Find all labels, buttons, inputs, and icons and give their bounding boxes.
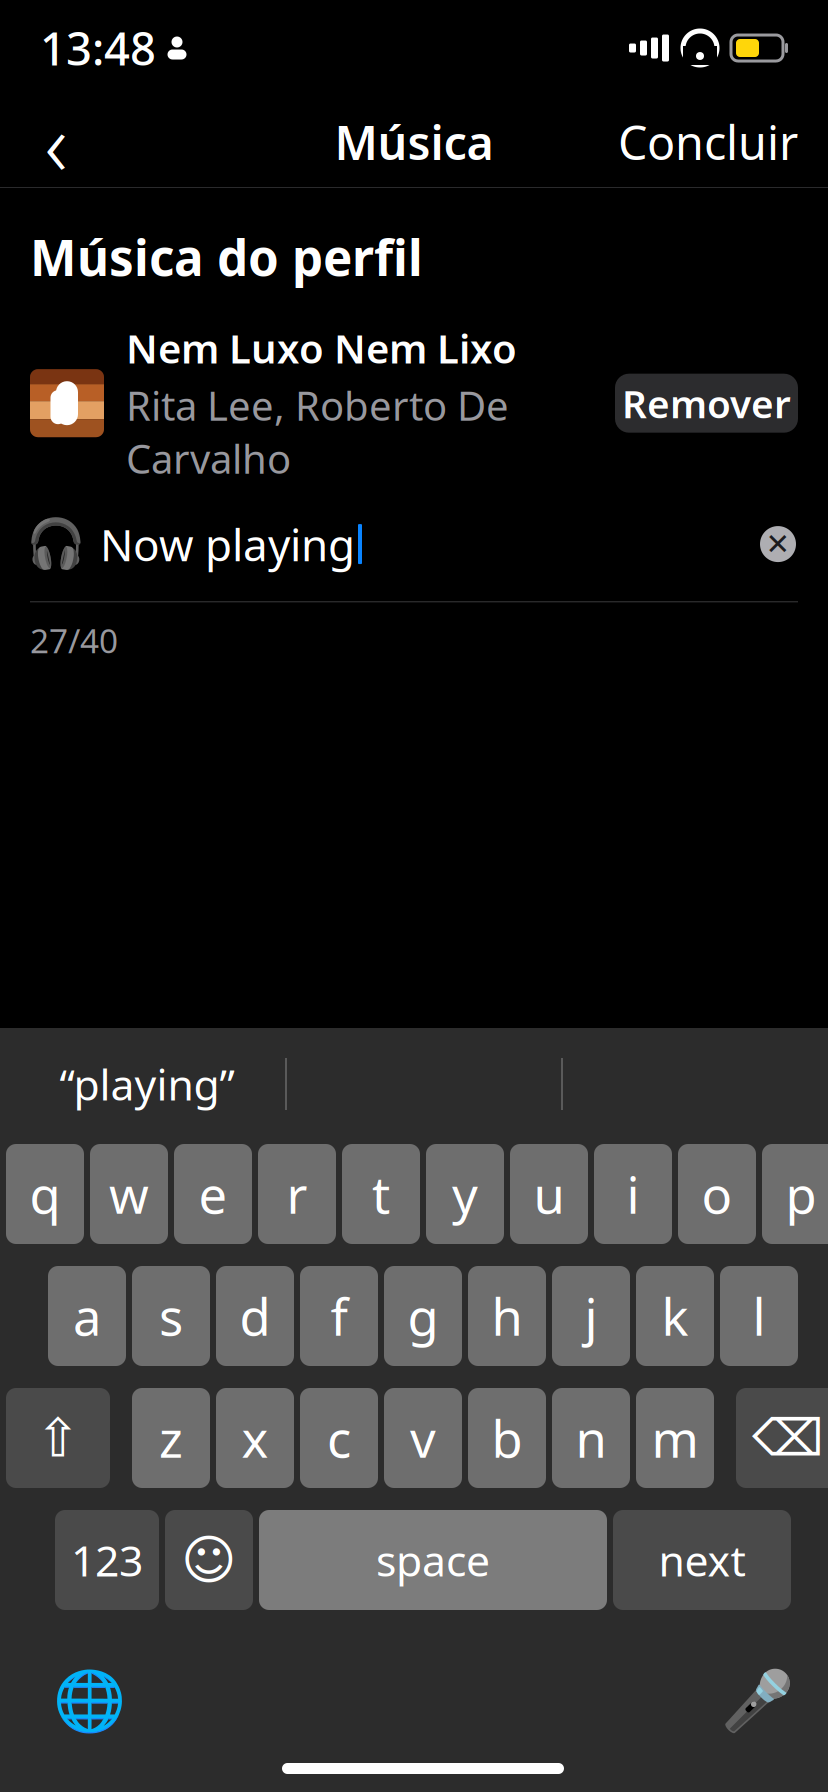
button[interactable]: t (342, 1144, 420, 1244)
staticText: d (239, 1282, 270, 1350)
button[interactable]: d (216, 1266, 294, 1366)
button[interactable]: ⌫ (736, 1388, 828, 1488)
staticText: r (286, 1160, 307, 1228)
button[interactable]: j (552, 1266, 630, 1366)
staticText: q (29, 1160, 60, 1228)
staticText: l (752, 1282, 765, 1350)
staticText: p (785, 1160, 816, 1228)
staticText: Rita Lee, Roberto De Carvalho (126, 379, 509, 485)
button[interactable]: s (132, 1266, 210, 1366)
staticText: y (452, 1160, 478, 1228)
button[interactable]: ☺ (165, 1510, 253, 1610)
button[interactable]: n (552, 1388, 630, 1488)
button[interactable]: Limpar texto (752, 518, 804, 570)
button[interactable]: h (468, 1266, 546, 1366)
staticText: ‹ (44, 84, 67, 200)
staticText: Música (334, 111, 493, 173)
staticText: x (241, 1404, 268, 1472)
button[interactable]: u (510, 1144, 588, 1244)
button[interactable]: c (300, 1388, 378, 1488)
button[interactable]: ⇧ (6, 1388, 110, 1488)
button[interactable]: a (48, 1266, 126, 1366)
button[interactable]: y (426, 1144, 504, 1244)
button[interactable]: l (720, 1266, 798, 1366)
button[interactable]: x (216, 1388, 294, 1488)
staticText: ⌫ (752, 1409, 824, 1467)
button[interactable]: next (613, 1510, 791, 1610)
staticText: space (376, 1532, 490, 1588)
staticText: 27/40 (30, 618, 118, 663)
staticText: z (159, 1404, 183, 1472)
button[interactable]: g (384, 1266, 462, 1366)
staticText: Concluir (618, 111, 798, 173)
staticText: n (575, 1404, 606, 1472)
button[interactable]: f (300, 1266, 378, 1366)
staticText: 🎤 (720, 1667, 793, 1734)
staticText: v (410, 1404, 436, 1472)
staticText: 123 (71, 1532, 143, 1588)
staticText: j (584, 1282, 597, 1350)
staticText: e (198, 1160, 227, 1228)
staticText: f (330, 1282, 347, 1350)
button[interactable]: Ditado (709, 1653, 805, 1749)
staticText: ☺ (181, 1530, 237, 1590)
button[interactable]: i (594, 1144, 672, 1244)
staticText: k (661, 1282, 688, 1350)
button[interactable]: Concluir (612, 97, 804, 187)
staticText: Nem Luxo Nem Lixo (126, 321, 517, 375)
button[interactable]: Mudar idioma (41, 1653, 137, 1749)
staticText: “playing” (59, 1056, 234, 1112)
button[interactable]: Voltar (24, 103, 88, 181)
staticText: w (109, 1160, 149, 1228)
button[interactable]: o (678, 1144, 756, 1244)
button[interactable]: Remover (615, 374, 798, 433)
button[interactable]: 123 (55, 1510, 159, 1610)
staticText: s (159, 1282, 183, 1350)
staticText: 🌐 (52, 1667, 125, 1734)
staticText: h (491, 1282, 522, 1350)
staticText: c (327, 1404, 351, 1472)
button[interactable]: q (6, 1144, 84, 1244)
staticText: t (372, 1160, 390, 1228)
button[interactable]: “playing” (9, 1032, 285, 1136)
button[interactable]: r (258, 1144, 336, 1244)
button[interactable]: space (259, 1510, 607, 1610)
staticText: m (651, 1404, 698, 1472)
button[interactable]: b (468, 1388, 546, 1488)
staticText: u (533, 1160, 564, 1228)
button[interactable]: w (90, 1144, 168, 1244)
staticText: a (73, 1282, 101, 1350)
staticText: Remover (622, 377, 791, 429)
button[interactable]: p (762, 1144, 828, 1244)
button[interactable]: k (636, 1266, 714, 1366)
button[interactable]: v (384, 1388, 462, 1488)
staticText: g (407, 1282, 438, 1350)
staticText: Now playing (100, 515, 355, 573)
staticText: next (658, 1532, 745, 1588)
staticText: Música do perfil (30, 224, 423, 289)
button[interactable]: m (636, 1388, 714, 1488)
staticText: i (626, 1160, 639, 1228)
staticText: ✕ (765, 527, 790, 561)
staticText: ⇧ (35, 1408, 80, 1468)
staticText: b (491, 1404, 522, 1472)
staticText: 🎧 (26, 517, 86, 571)
staticText: o (701, 1160, 732, 1228)
button[interactable]: z (132, 1388, 210, 1488)
staticText: 13:48 (40, 18, 156, 78)
button[interactable]: e (174, 1144, 252, 1244)
